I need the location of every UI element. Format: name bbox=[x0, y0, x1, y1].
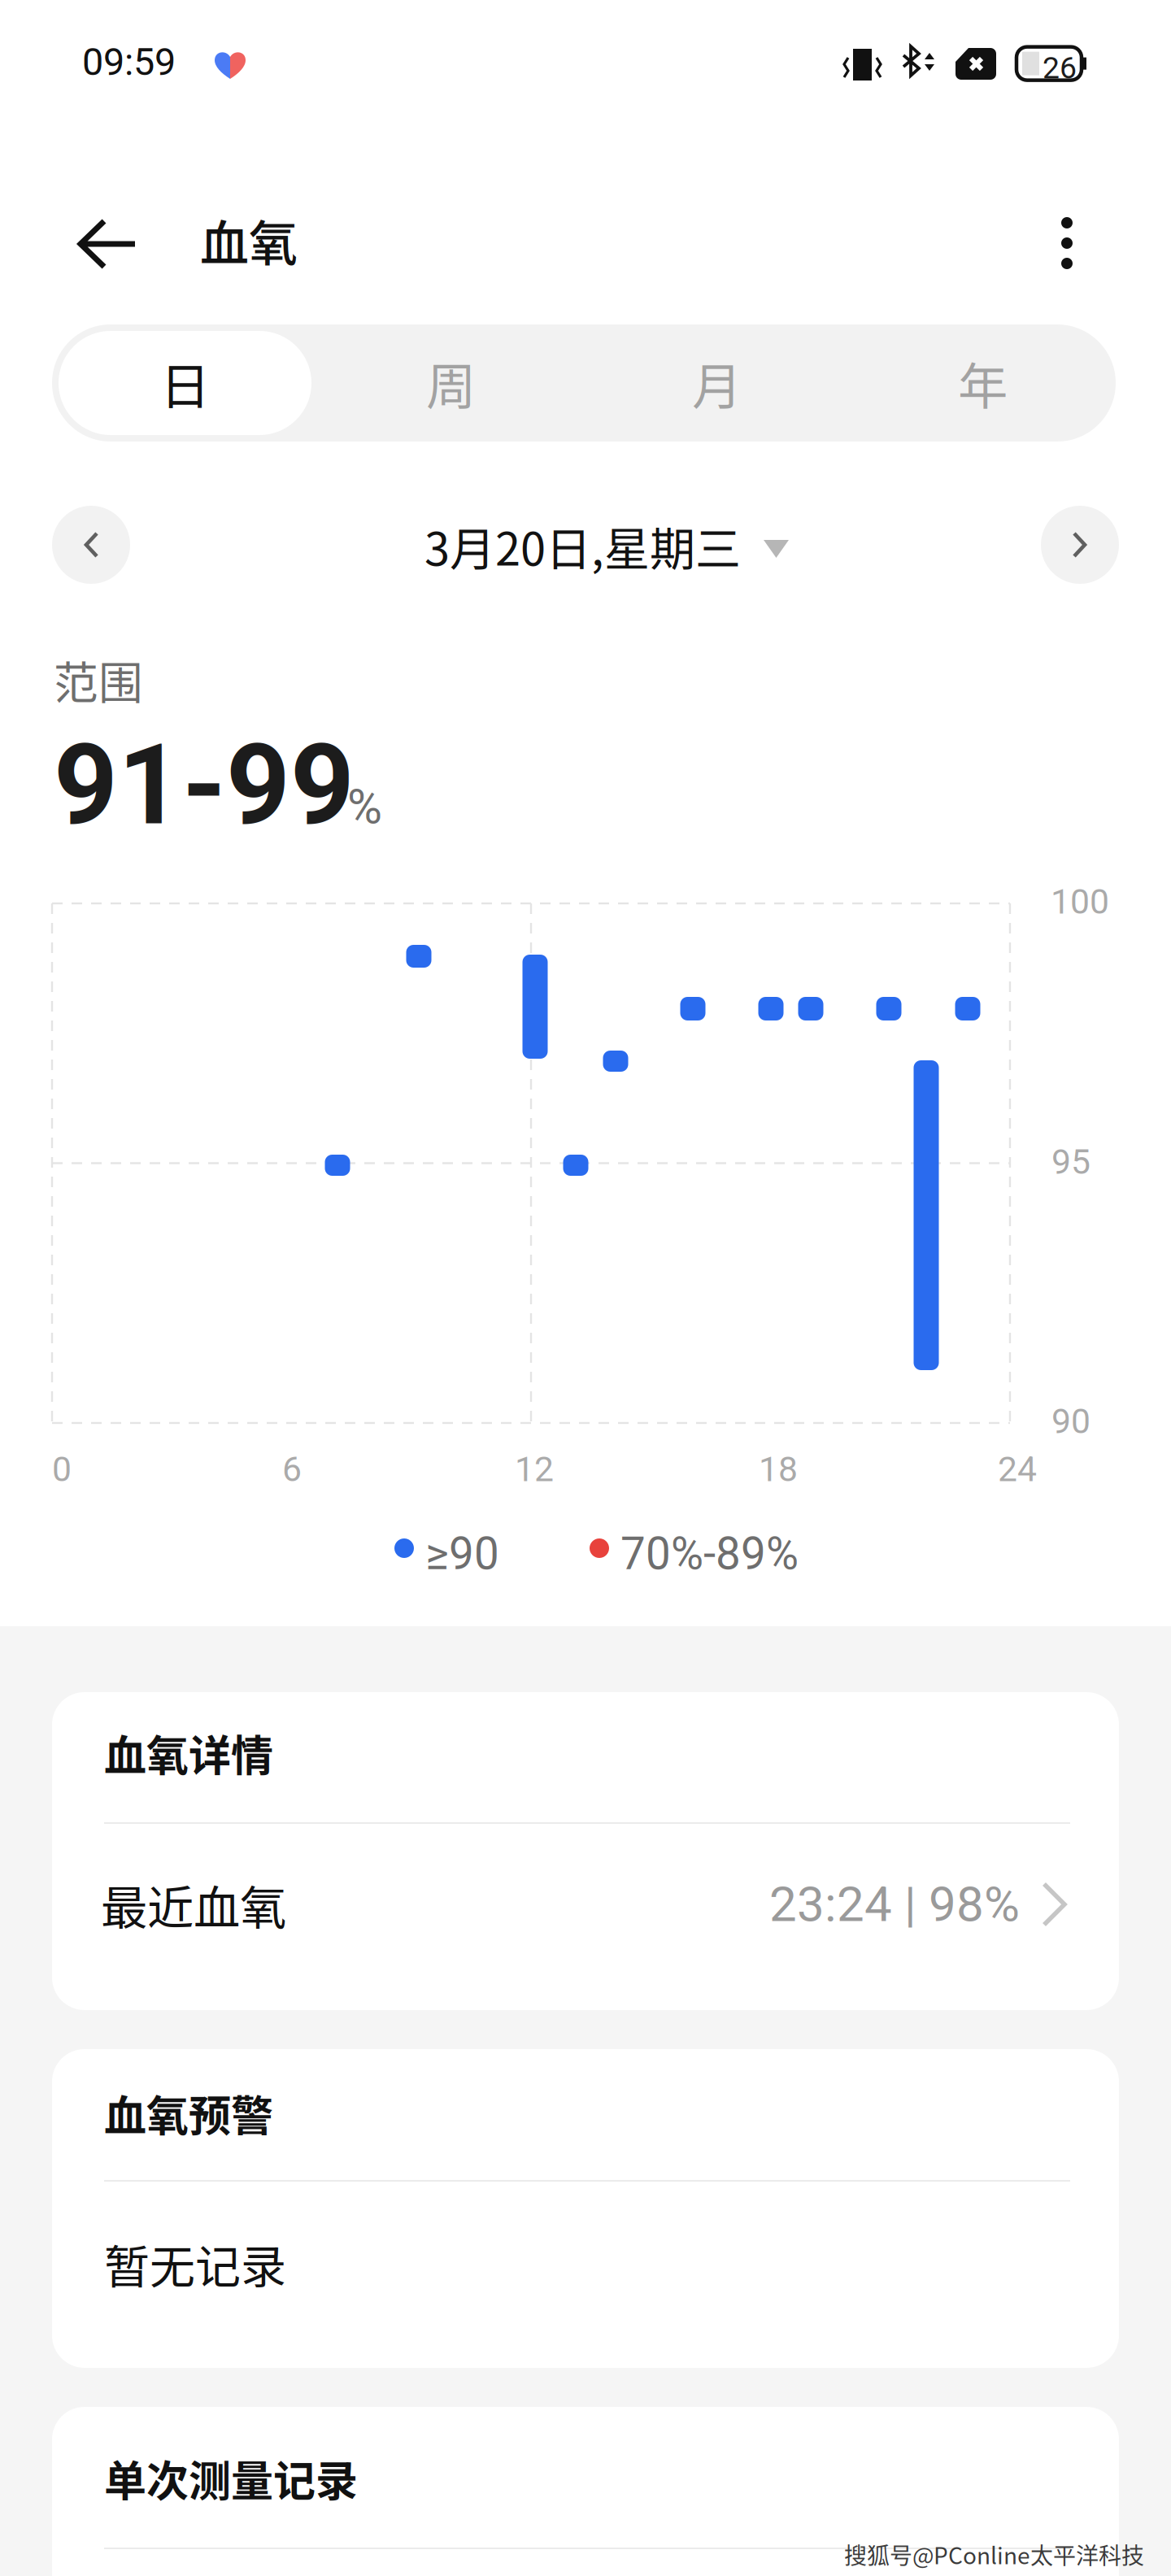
staticText: 18 bbox=[759, 1449, 798, 1490]
button[interactable]: 月 bbox=[584, 324, 850, 442]
button[interactable]: Previous day bbox=[52, 506, 130, 584]
staticText: 95 bbox=[1051, 1142, 1090, 1182]
button[interactable]: Next day bbox=[1041, 506, 1119, 584]
button[interactable]: 年 bbox=[850, 324, 1116, 442]
staticText: 月 bbox=[692, 347, 742, 419]
staticText: 周 bbox=[426, 347, 476, 419]
staticText: 血氧预警 bbox=[104, 2082, 273, 2144]
button[interactable]: Back bbox=[72, 211, 146, 276]
staticText: 年 bbox=[958, 347, 1008, 419]
button[interactable]: 最近血氧 bbox=[52, 1852, 1119, 1956]
staticText: 范围 bbox=[54, 647, 143, 712]
staticText: 3月20日,星期三 bbox=[424, 513, 741, 579]
staticText: 暂无记录 bbox=[104, 2230, 286, 2296]
staticText: 23:24 | 98% bbox=[769, 1876, 1020, 1933]
staticText: 26 bbox=[1043, 50, 1077, 86]
staticText: 血氧详情 bbox=[104, 1722, 273, 1783]
staticText: 6 bbox=[282, 1449, 302, 1490]
staticText: 100 bbox=[1051, 881, 1109, 922]
staticText: 最近血氧 bbox=[101, 1871, 286, 1938]
staticText: 单次测量记录 bbox=[104, 2448, 358, 2509]
staticText: 90 bbox=[1051, 1401, 1090, 1442]
staticText: 搜狐号@PConline太平洋科技 bbox=[844, 2538, 1144, 2571]
staticText: 24 bbox=[998, 1449, 1037, 1490]
staticText: % bbox=[347, 779, 382, 835]
button[interactable]: 日 bbox=[52, 324, 318, 442]
button[interactable]: More options bbox=[1038, 210, 1096, 276]
staticText: 日 bbox=[160, 347, 210, 419]
button[interactable]: 周 bbox=[318, 324, 584, 442]
staticText: 12 bbox=[515, 1449, 554, 1490]
staticText: ≥90 bbox=[425, 1528, 499, 1580]
staticText: 09:59 bbox=[82, 40, 176, 84]
staticText: 血氧 bbox=[200, 205, 298, 276]
staticText: 91-99 bbox=[54, 720, 355, 850]
staticText: 0 bbox=[52, 1449, 72, 1490]
button[interactable]: 3月20日,星期三 bbox=[424, 517, 789, 574]
staticText: 70%-89% bbox=[620, 1528, 799, 1580]
